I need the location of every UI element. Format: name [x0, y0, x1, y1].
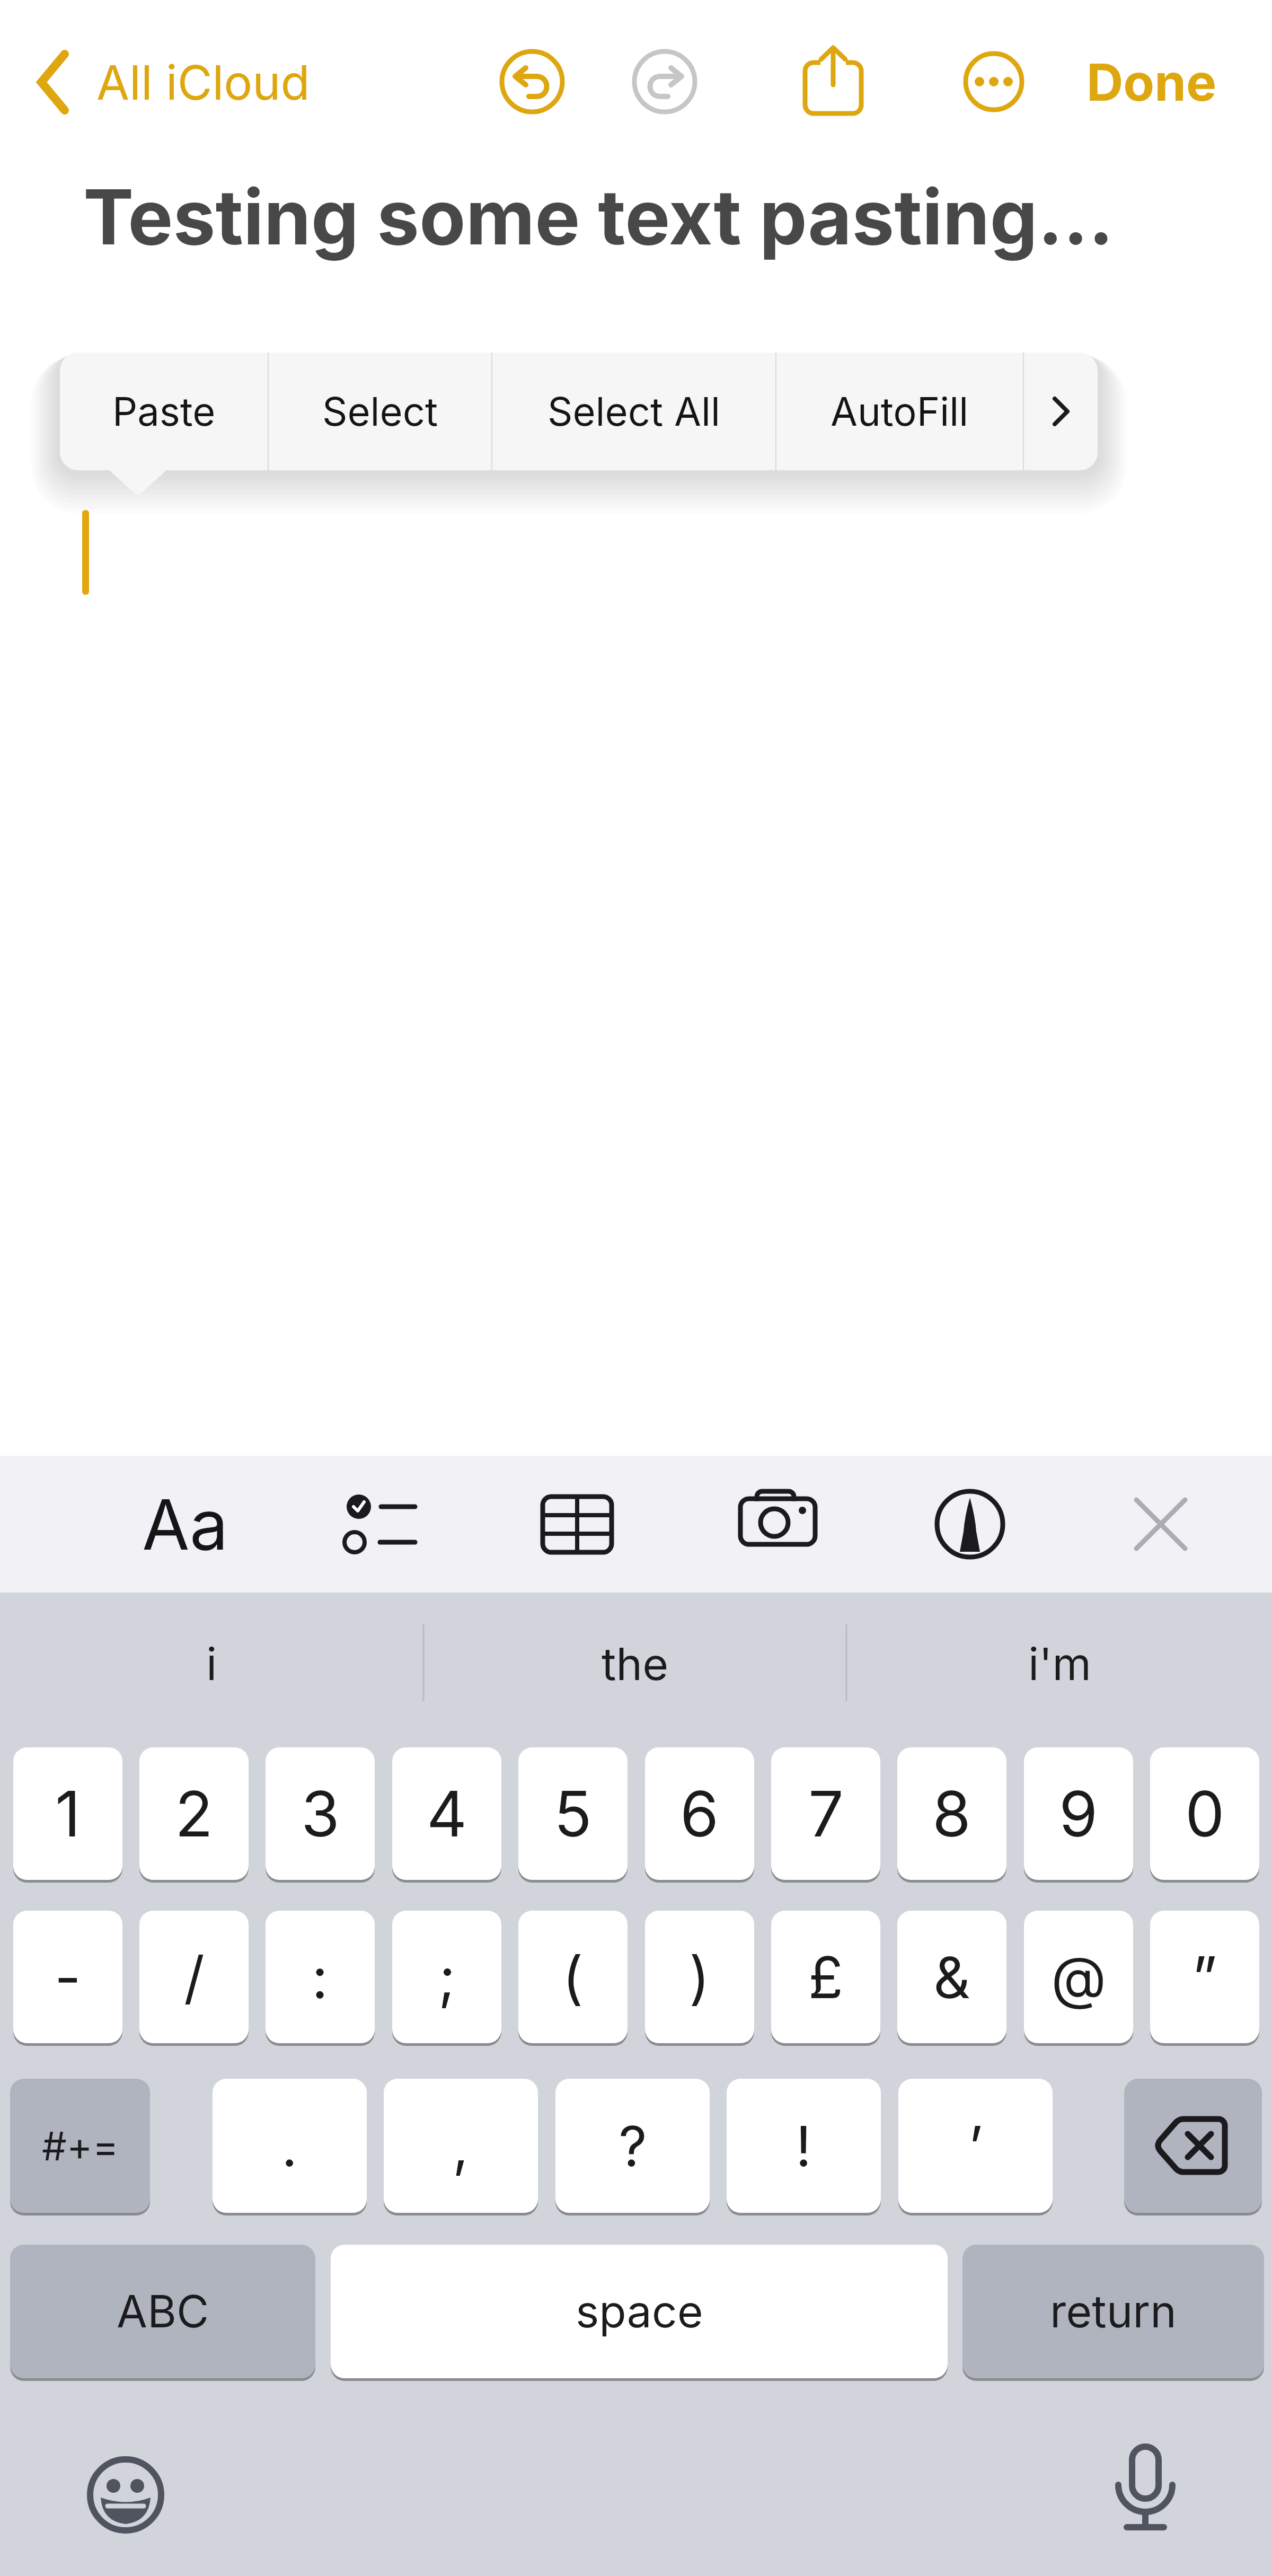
button[interactable]: ( [518, 1911, 628, 2043]
staticText: 1 [55, 1776, 81, 1852]
staticText: 7 [808, 1776, 844, 1852]
button[interactable]: / [139, 1911, 249, 2043]
staticText: Aa [142, 1483, 228, 1566]
button[interactable]: & [897, 1911, 1006, 2043]
staticText: ’ [968, 2112, 983, 2179]
button[interactable]: ? [555, 2079, 710, 2213]
staticText: 4 [427, 1776, 467, 1852]
button[interactable]: 7 [771, 1747, 880, 1880]
button[interactable] [320, 1466, 436, 1582]
button[interactable]: £ [771, 1911, 880, 2043]
button[interactable]: 2 [139, 1747, 249, 1880]
button[interactable]: Paste [60, 353, 268, 470]
button[interactable]: All iCloud [32, 48, 403, 117]
button[interactable]: AutoFill [776, 353, 1023, 470]
button[interactable] [1102, 1466, 1219, 1582]
button[interactable]: ABC [10, 2245, 315, 2378]
staticText: Select [322, 388, 438, 435]
button[interactable] [1124, 2079, 1262, 2213]
button[interactable]: Aa [100, 1456, 270, 1593]
staticText: the [602, 1637, 669, 1691]
button[interactable] [957, 45, 1031, 119]
staticText: ” [1192, 1942, 1217, 2012]
button[interactable]: - [13, 1911, 122, 2043]
button[interactable] [1087, 2433, 1204, 2550]
staticText: Paste [112, 388, 216, 435]
button[interactable]: i'm [847, 1624, 1272, 1704]
button[interactable] [720, 1466, 836, 1582]
button[interactable]: 4 [392, 1747, 501, 1880]
staticText: £ [808, 1942, 843, 2012]
button[interactable]: 1 [13, 1747, 122, 1880]
button[interactable] [67, 2437, 184, 2553]
button[interactable]: Select All [492, 353, 775, 470]
button[interactable]: 0 [1150, 1747, 1259, 1880]
button[interactable]: , [384, 2079, 538, 2213]
staticText: i [206, 1637, 217, 1691]
staticText: 3 [301, 1776, 340, 1852]
staticText: ! [796, 2112, 812, 2179]
button[interactable]: Done [1083, 48, 1221, 117]
button[interactable] [628, 45, 702, 119]
button[interactable] [495, 45, 569, 119]
staticText: return [1050, 2284, 1177, 2338]
staticText: 2 [175, 1776, 213, 1852]
button[interactable]: @ [1024, 1911, 1133, 2043]
button[interactable]: return [962, 2245, 1264, 2378]
staticText: : [312, 1942, 329, 2012]
staticText: ? [619, 2112, 647, 2179]
button[interactable]: 6 [645, 1747, 754, 1880]
button[interactable]: ! [727, 2079, 881, 2213]
staticText: 6 [680, 1776, 719, 1852]
button[interactable]: the [425, 1624, 846, 1704]
button[interactable] [912, 1466, 1028, 1582]
staticText: - [55, 1942, 81, 2012]
staticText: Select All [547, 388, 720, 435]
staticText: 5 [554, 1776, 592, 1852]
staticText: 0 [1185, 1776, 1225, 1852]
staticText: / [184, 1942, 205, 2012]
staticText: AutoFill [831, 388, 969, 435]
staticText: 8 [932, 1776, 971, 1852]
button[interactable] [1024, 353, 1098, 470]
staticText: . [281, 2112, 298, 2179]
button[interactable]: #+= [10, 2079, 150, 2213]
staticText: 9 [1059, 1776, 1098, 1852]
staticText: @ [1051, 1942, 1107, 2012]
staticText: All iCloud [96, 54, 310, 111]
staticText: Testing some text pasting… [83, 171, 1114, 262]
staticText: ) [689, 1942, 710, 2012]
button[interactable] [796, 45, 870, 119]
button[interactable]: 5 [518, 1747, 628, 1880]
button[interactable]: 3 [266, 1747, 375, 1880]
button[interactable]: 9 [1024, 1747, 1133, 1880]
button[interactable]: ’ [898, 2079, 1053, 2213]
button[interactable]: 8 [897, 1747, 1006, 1880]
staticText: ; [438, 1942, 456, 2012]
staticText: i'm [1028, 1637, 1092, 1691]
staticText: Done [1086, 51, 1217, 113]
staticText: #+= [42, 2122, 119, 2170]
button[interactable]: i [0, 1624, 423, 1704]
button[interactable]: ) [645, 1911, 754, 2043]
staticText: ( [562, 1942, 584, 2012]
staticText: , [453, 2112, 469, 2179]
staticText: space [576, 2284, 703, 2338]
button[interactable] [519, 1466, 635, 1582]
button[interactable]: ” [1150, 1911, 1259, 2043]
button[interactable]: : [266, 1911, 375, 2043]
button[interactable]: . [213, 2079, 367, 2213]
button[interactable]: space [331, 2245, 948, 2378]
button[interactable]: Select [269, 353, 491, 470]
button[interactable]: ; [392, 1911, 501, 2043]
staticText: & [933, 1942, 970, 2012]
staticText: ABC [117, 2284, 209, 2338]
